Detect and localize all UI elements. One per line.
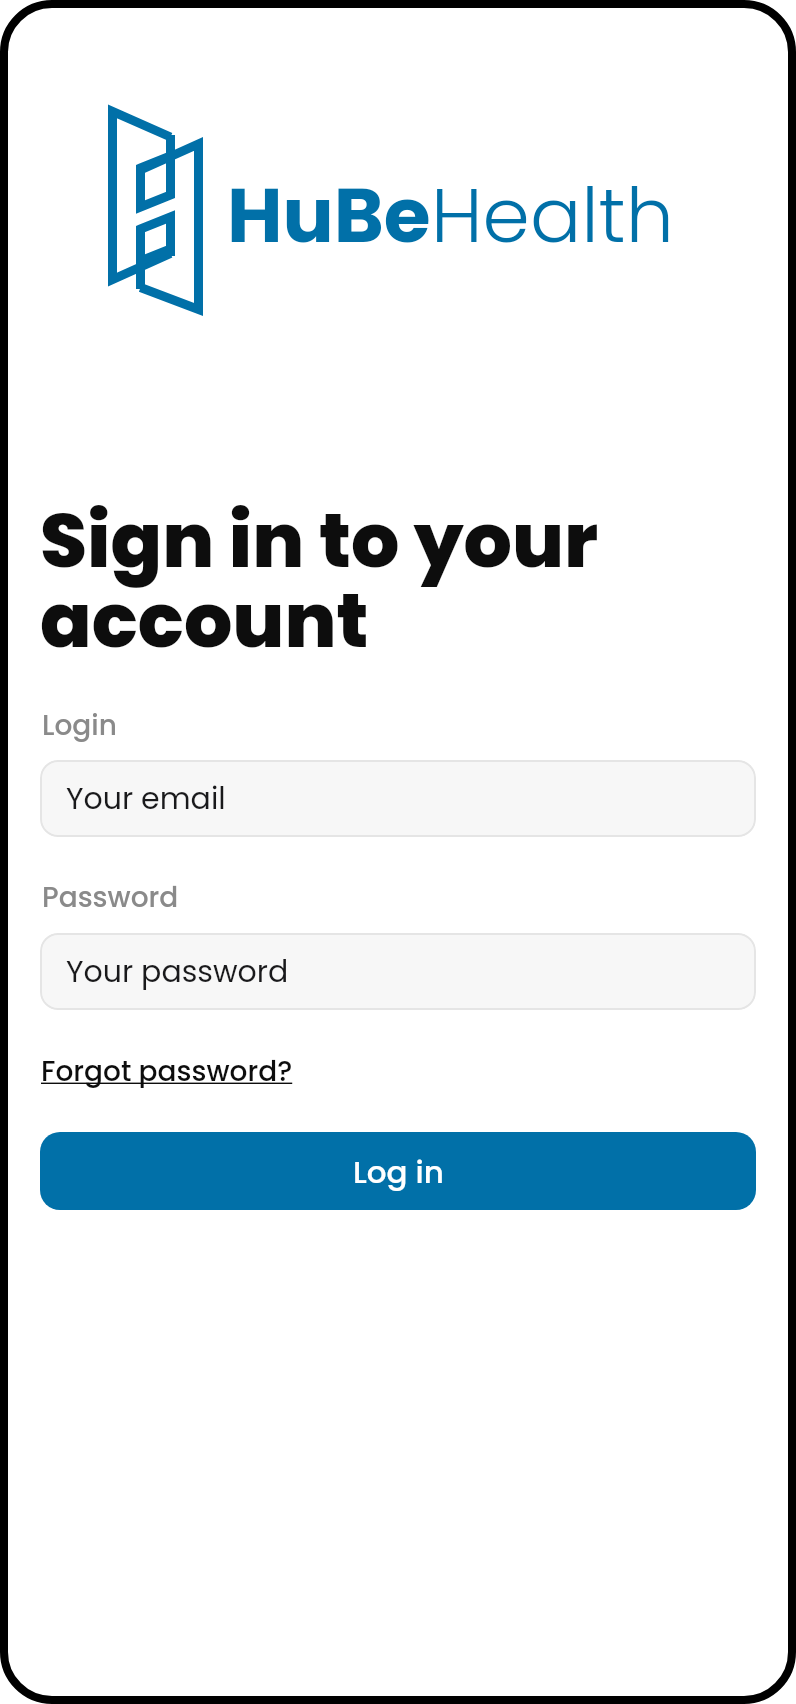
button[interactable]: Your email (40, 760, 756, 837)
staticText: Log in (353, 1150, 444, 1193)
button[interactable]: Log in (40, 1132, 756, 1210)
staticText: Password (42, 878, 179, 917)
button[interactable]: Forgot password? (41, 1052, 293, 1091)
staticText: HuBe (227, 162, 431, 268)
staticText: Health (431, 162, 674, 268)
staticText: Forgot password? (41, 1052, 293, 1091)
staticText: Your email (66, 778, 226, 820)
staticText: Your password (66, 951, 289, 993)
staticText: Login (42, 706, 117, 745)
button[interactable]: Your password (40, 933, 756, 1010)
staticText: Sign in to your account (40, 487, 598, 673)
